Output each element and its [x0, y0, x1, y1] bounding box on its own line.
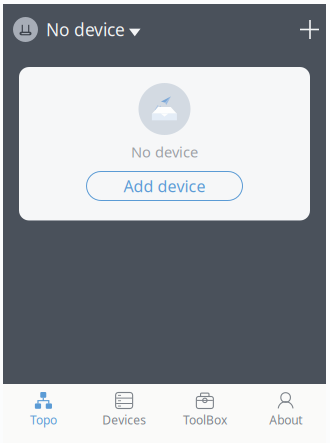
- button[interactable]: Devices: [84, 384, 165, 443]
- button[interactable]: ToolBox: [164, 384, 245, 443]
- staticText: No device: [46, 18, 125, 41]
- staticText: Add device: [123, 175, 205, 197]
- staticText: ToolBox: [183, 412, 227, 428]
- button[interactable]: Add device: [86, 171, 242, 200]
- button[interactable]: Add device: [297, 17, 322, 42]
- staticText: About: [269, 412, 302, 428]
- staticText: No device: [131, 142, 198, 161]
- button[interactable]: About: [245, 384, 326, 443]
- button[interactable]: No device: [13, 17, 140, 42]
- staticText: Topo: [30, 412, 57, 428]
- staticText: Devices: [102, 412, 146, 428]
- button[interactable]: Topo: [3, 384, 84, 443]
